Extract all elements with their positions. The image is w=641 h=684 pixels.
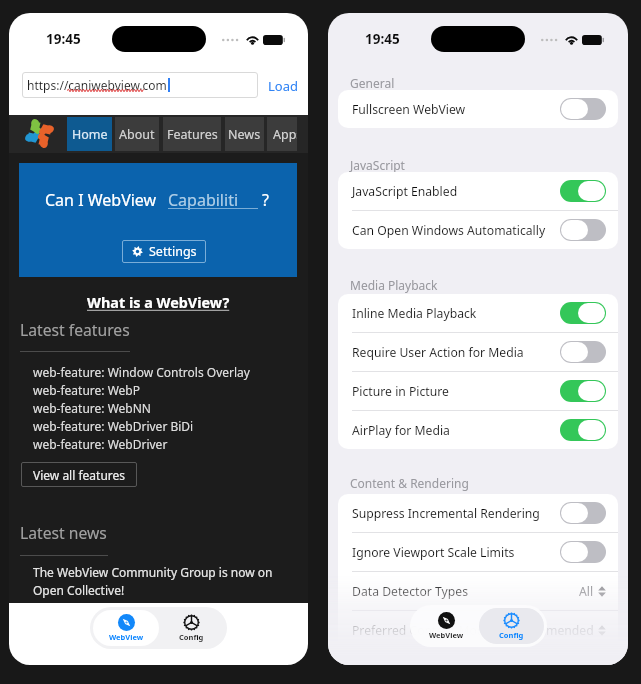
button[interactable]: Data Detector Types [338, 572, 618, 610]
button[interactable]: Config [479, 608, 544, 644]
button[interactable]: News [225, 117, 264, 151]
staticText: Suppress Incremental Rendering [352, 505, 540, 522]
staticText: JavaScript Enabled [352, 183, 458, 200]
button[interactable]: Off [560, 541, 606, 563]
button[interactable]: WebView [93, 610, 159, 646]
button[interactable]: Picture in Picture [338, 372, 618, 410]
staticText: web-feature: WebDriver [33, 436, 168, 452]
button[interactable]: Ignore Viewport Scale Limits [338, 533, 618, 571]
staticText: web-feature: WebP [33, 382, 140, 398]
button[interactable]: On [560, 419, 606, 441]
other: Can I WebView logo [26, 119, 53, 148]
staticText: Load [268, 77, 298, 95]
button[interactable]: On [560, 380, 606, 402]
staticText: General [350, 75, 395, 91]
button[interactable]: JavaScript Enabled [338, 172, 618, 210]
button[interactable]: Preferred Content Mode [338, 611, 618, 649]
button[interactable]: On [560, 302, 606, 324]
button[interactable]: Apps [267, 117, 297, 151]
button[interactable]: Settings [122, 240, 206, 263]
staticText: Latest features [20, 319, 130, 340]
staticText: View all features [33, 467, 126, 483]
staticText: https://caniwebview.com [27, 77, 167, 93]
button[interactable]: Off [560, 98, 606, 120]
other: Config [503, 612, 520, 629]
button[interactable]: Load [264, 74, 302, 97]
staticText: The WebView Community Group is now on Op… [33, 564, 273, 598]
button[interactable]: Inline Media Playback [338, 294, 618, 332]
button[interactable]: Fullscreen WebView [338, 90, 618, 128]
staticText: Config [179, 632, 204, 642]
button[interactable]: About [115, 117, 159, 151]
staticText: Apps [273, 126, 297, 143]
other: WebView [118, 614, 135, 631]
staticText: web-feature: Window Controls Overlay [33, 364, 250, 380]
staticText: All [579, 583, 594, 600]
staticText: Can Open Windows Automatically [352, 222, 546, 239]
button[interactable]: Home [67, 117, 112, 151]
button[interactable]: Off [560, 219, 606, 241]
staticText: Capabiliti [168, 189, 239, 211]
staticText: web-feature: WebDriver BiDi [33, 418, 194, 434]
button[interactable]: Features [163, 117, 221, 151]
button[interactable]: Suppress Incremental Rendering [338, 494, 618, 532]
staticText: 19:45 [365, 30, 400, 48]
staticText: WebView [429, 630, 464, 640]
staticText: Require User Action for Media [352, 344, 524, 361]
staticText: AirPlay for Media [352, 422, 450, 439]
staticText: Data Detector Types [352, 583, 468, 600]
staticText: News [228, 126, 261, 143]
staticText: Inline Media Playback [352, 305, 477, 322]
button[interactable]: AirPlay for Media [338, 411, 618, 449]
button[interactable]: Config [159, 610, 224, 646]
button[interactable]: WebView [413, 608, 479, 644]
staticText: Preferred Content Mode [352, 622, 492, 639]
other: WebView [438, 612, 455, 629]
staticText: Config [499, 630, 524, 640]
other: Config [183, 614, 200, 631]
staticText: Media Playback [350, 277, 438, 293]
staticText: Ignore Viewport Scale Limits [352, 544, 515, 561]
staticText: 19:45 [46, 30, 81, 48]
staticText: web-feature: WebNN [33, 400, 151, 416]
button[interactable]: On [560, 180, 606, 202]
button[interactable]: What is a WebView? [87, 293, 230, 313]
staticText: Home [72, 126, 108, 143]
staticText: Picture in Picture [352, 383, 449, 400]
staticText: Can I WebView [45, 189, 157, 211]
staticText: WebView [109, 632, 144, 642]
button[interactable]: Off [560, 502, 606, 524]
button[interactable]: Can Open Windows Automatically [338, 211, 618, 249]
button[interactable]: https://caniwebview.com [22, 72, 258, 98]
staticText: Content & Rendering [350, 475, 469, 491]
button[interactable]: Require User Action for Media [338, 333, 618, 371]
staticText: JavaScript [350, 157, 405, 173]
staticText: Fullscreen WebView [352, 101, 466, 118]
staticText: Recommended [507, 622, 594, 639]
staticText: Features [167, 126, 218, 143]
button[interactable]: Off [560, 341, 606, 363]
staticText: About [119, 126, 155, 143]
staticText: Latest news [20, 522, 107, 543]
staticText: ? [262, 189, 269, 211]
staticText: Settings [149, 243, 197, 260]
button[interactable]: View all features [21, 462, 137, 487]
